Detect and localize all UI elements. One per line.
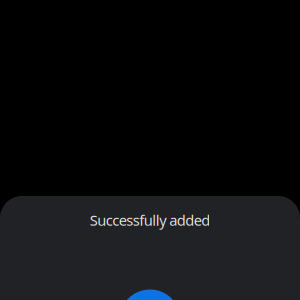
button[interactable]: Add — [119, 289, 180, 300]
button[interactable]: Dismiss — [0, 0, 300, 300]
staticText: Successfully added — [90, 210, 210, 230]
